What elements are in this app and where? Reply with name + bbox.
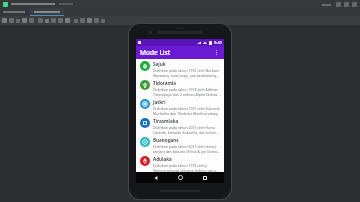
button[interactable]	[16, 19, 20, 23]
staticText: Didirikan pada tahun 1972 oleh Nurbani N…	[153, 68, 221, 78]
button[interactable]: Recent apps	[199, 172, 210, 183]
button[interactable]	[87, 18, 92, 23]
button[interactable]	[58, 18, 63, 23]
button[interactable]	[51, 18, 56, 23]
button[interactable]: Sejuk	[136, 59, 224, 78]
staticText: Didirikan pada tahun 1918 oleh Adhitan T…	[153, 87, 221, 97]
staticText: Sejuk	[153, 61, 166, 67]
staticText: Didirikan pada tahun 1931 oleh Sukomlo M…	[153, 106, 221, 116]
button[interactable]	[94, 18, 99, 23]
staticText: Adulaka	[153, 156, 172, 162]
button[interactable]: More options	[211, 47, 222, 58]
staticText: Didirikan pada tahun 2011 oleh tenorji t…	[153, 144, 221, 154]
button[interactable]	[74, 19, 78, 23]
staticText: Jatkri	[153, 99, 166, 105]
staticText: 9:41	[214, 40, 222, 45]
staticText: Tirasmlaka	[153, 118, 179, 124]
staticText: Didirikan pada tahun 1974 oleh ji Narnic…	[153, 163, 221, 172]
button[interactable]	[101, 19, 105, 23]
button[interactable]: Home	[175, 172, 186, 183]
button[interactable]	[29, 18, 34, 23]
staticText: Buanogans	[153, 137, 179, 143]
button[interactable]	[22, 18, 27, 23]
button[interactable]: Jatkri	[136, 97, 224, 116]
button[interactable]: Buanogans	[136, 135, 224, 154]
button[interactable]	[65, 18, 70, 23]
button[interactable]: Back	[150, 172, 161, 183]
button[interactable]	[80, 18, 85, 23]
staticText: Didirikan pada tahun 2013 oleh Fuma Usta…	[153, 125, 221, 135]
button[interactable]: Adulaka	[136, 154, 224, 172]
button[interactable]	[38, 18, 43, 23]
button[interactable]	[2, 18, 7, 23]
button[interactable]: Tirasmlaka	[136, 116, 224, 135]
staticText: Mode List	[140, 48, 171, 57]
button[interactable]: Tidoramla	[136, 78, 224, 97]
staticText: Tidoramla	[153, 80, 177, 86]
button[interactable]	[45, 19, 49, 23]
button[interactable]	[9, 18, 14, 23]
